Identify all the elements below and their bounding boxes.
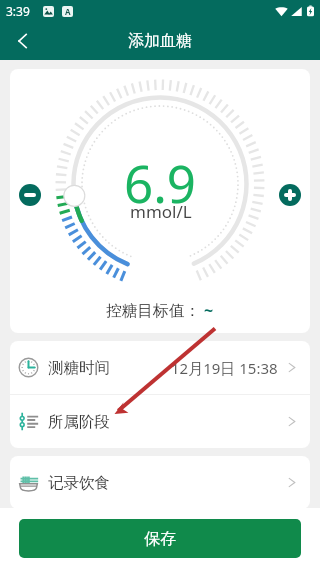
button[interactable]: 测糖时间 bbox=[10, 341, 310, 394]
staticText: 测糖时间 bbox=[48, 358, 110, 378]
staticText: 记录饮食 bbox=[48, 473, 110, 493]
staticText: 控糖目标值： bbox=[106, 301, 201, 321]
button[interactable]: Increase bbox=[279, 184, 301, 206]
staticText: 保存 bbox=[144, 529, 176, 549]
button[interactable]: 记录饮食 bbox=[10, 456, 310, 509]
staticText: 添加血糖 bbox=[128, 31, 192, 51]
staticText: 6.9 bbox=[124, 148, 197, 217]
staticText: ~ bbox=[204, 299, 214, 321]
staticText: 12月19日 15:38 bbox=[171, 358, 278, 378]
staticText: 3:39 bbox=[6, 3, 30, 19]
button[interactable]: 保存 bbox=[19, 519, 301, 558]
button[interactable]: Decrease bbox=[19, 184, 41, 206]
button[interactable]: 所属阶段 bbox=[10, 395, 310, 448]
staticText: mmol/L bbox=[130, 200, 192, 223]
staticText: 所属阶段 bbox=[48, 412, 110, 432]
staticText: A bbox=[65, 6, 71, 17]
button[interactable]: Back bbox=[4, 22, 42, 60]
